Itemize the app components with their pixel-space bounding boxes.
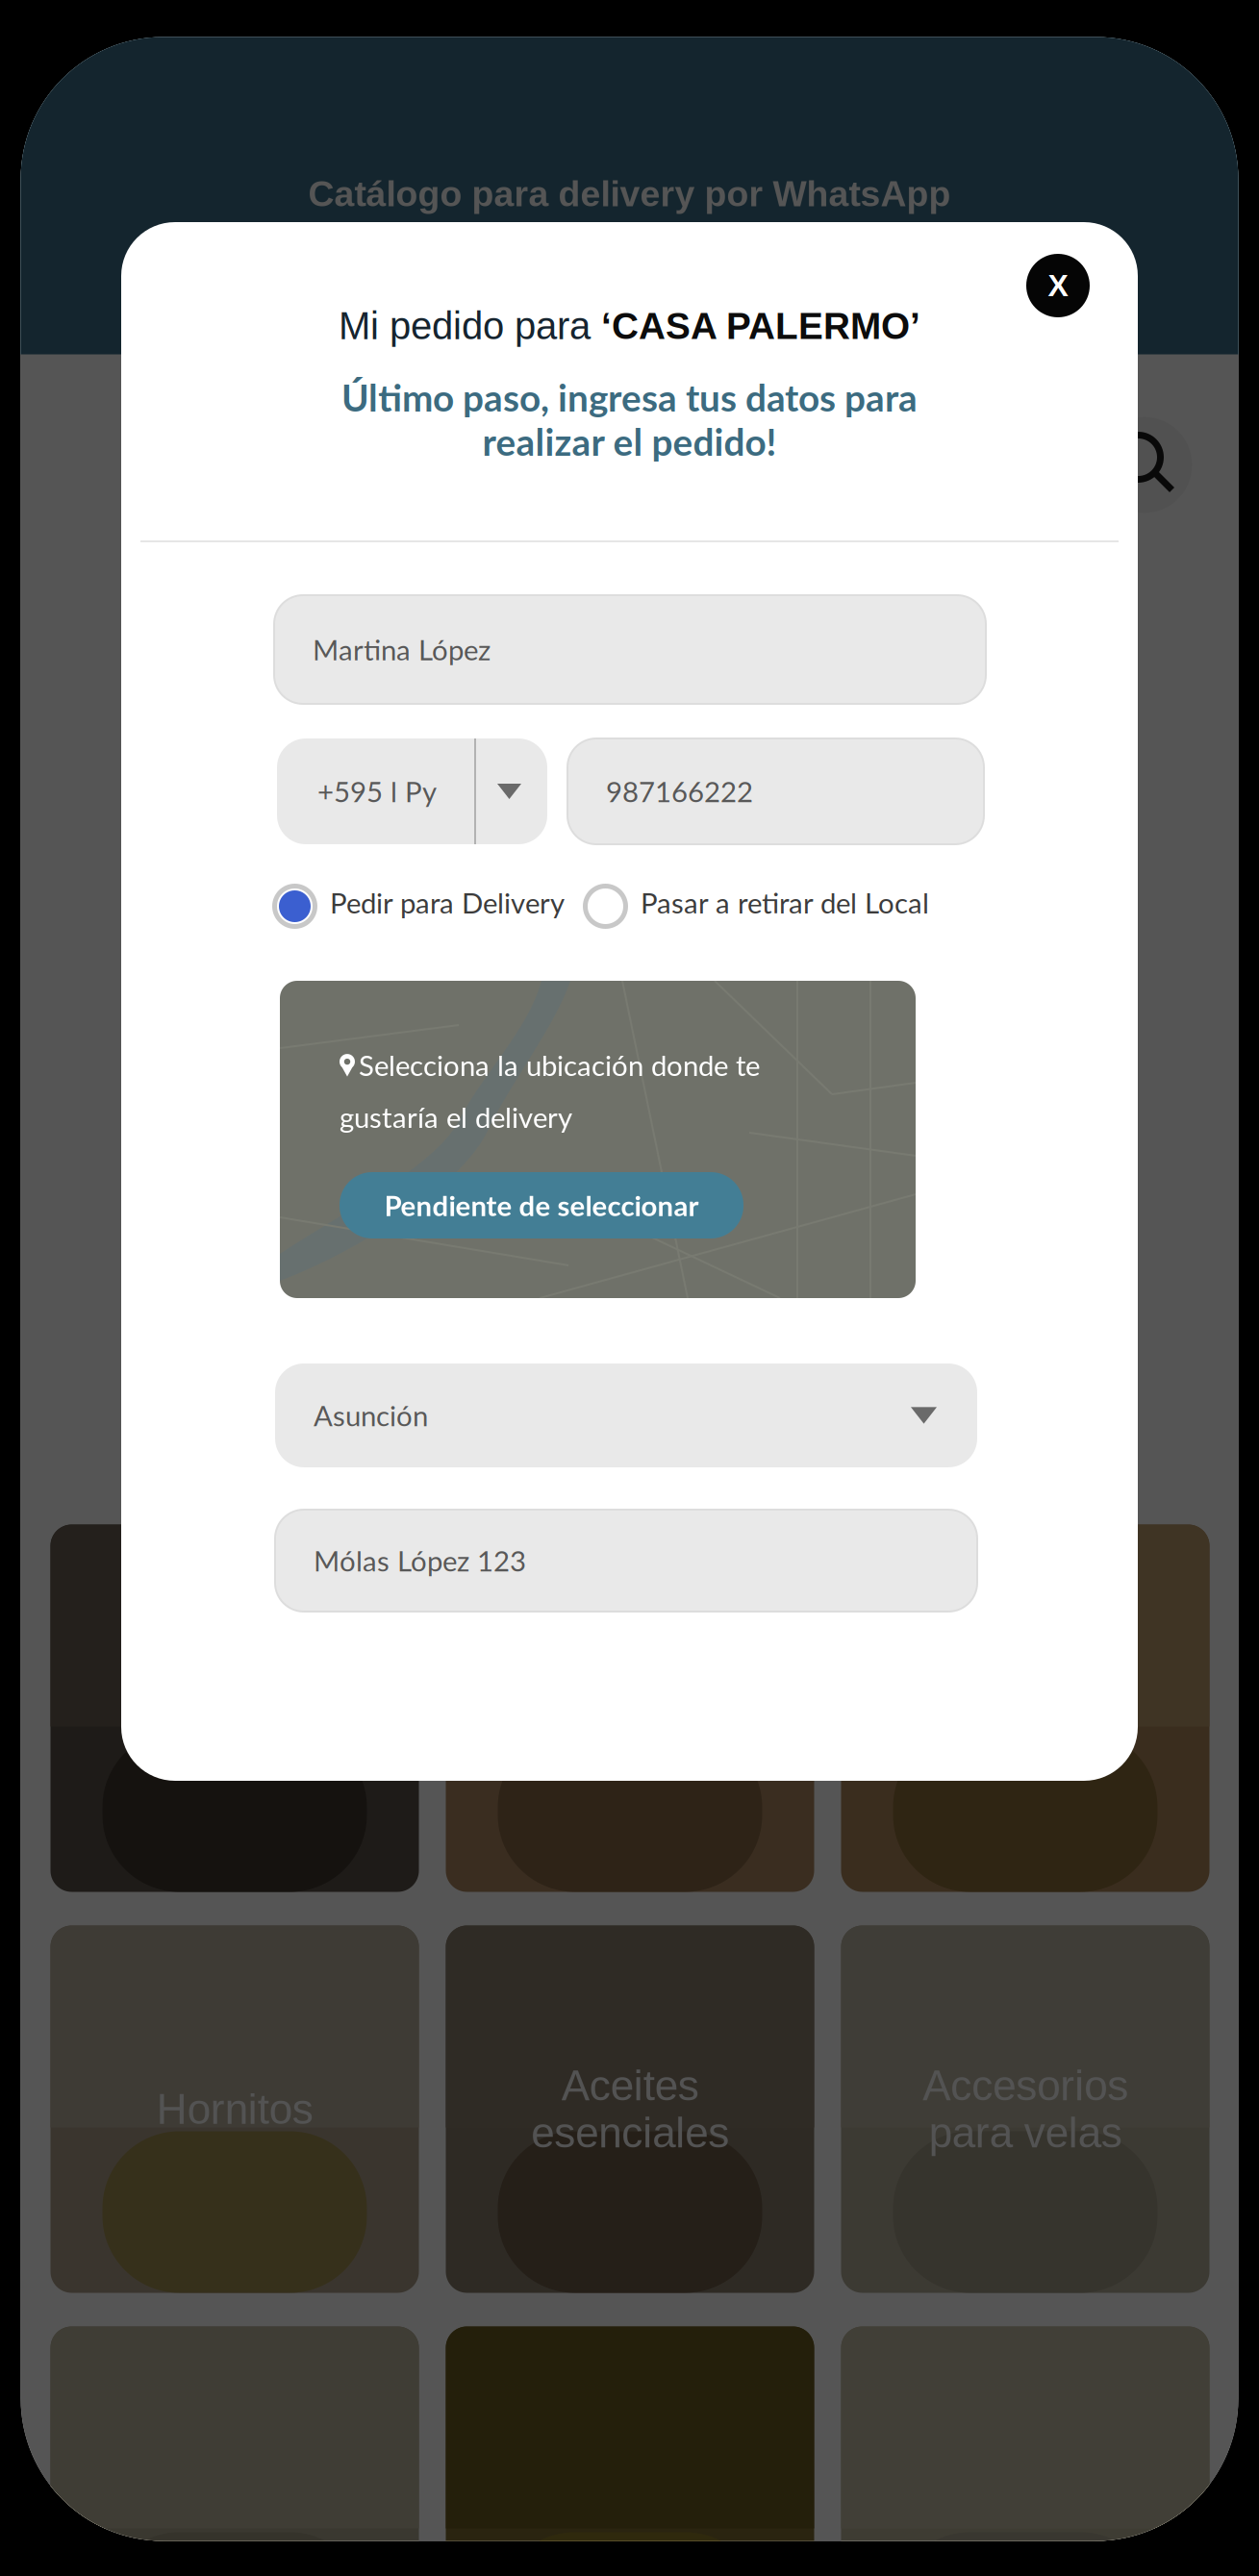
staticText: Martina López [313,633,491,666]
button[interactable]: Asunción [275,1363,977,1467]
staticText: Asunción [314,1398,428,1432]
staticText: Mi pedido para [339,305,601,348]
button[interactable]: Cerrar [1026,254,1090,317]
button[interactable]: Pasar a retirar del Local [583,884,628,929]
button[interactable]: Buscar [1096,417,1192,513]
button[interactable]: 987166222 [567,738,984,844]
staticText: +595 l Py [317,774,437,808]
staticText: X [1048,268,1068,303]
staticText: Pasar a retirar del Local [641,886,929,919]
staticText: gustaría el delivery [340,1100,572,1134]
staticText: Pendiente de seleccionar [384,1188,699,1222]
button[interactable]: Hornitos [50,1926,419,2293]
staticText: ‘CASA PALERMO’ [601,305,920,347]
button[interactable]: Mólas López 123 [275,1510,977,1612]
button[interactable] [841,2326,1209,2576]
staticText: Accesorios para velas [922,2062,1128,2156]
button[interactable]: Pendiente de seleccionar [340,1172,743,1238]
staticText: Pedir para Delivery [330,886,565,919]
button[interactable] [446,1525,814,1892]
staticText: realizar el pedido! [482,419,777,464]
button[interactable]: Aceites esenciales [446,1926,814,2293]
staticText: Último paso, ingresa tus datos para [341,375,918,419]
staticText: Hornitos [156,2086,313,2133]
button[interactable] [50,1525,419,1892]
button[interactable]: +595 l Py [277,738,547,844]
button[interactable]: Martina López [274,595,986,704]
staticText: Selecciona la ubicación donde te [359,1048,760,1082]
staticText: Catálogo para delivery por WhatsApp [308,174,951,214]
button[interactable]: Pedir para Delivery [272,884,317,929]
staticText: Aceites esenciales [531,2062,729,2156]
button[interactable] [841,1525,1209,1892]
button[interactable] [50,2326,419,2576]
staticText: 987166222 [606,774,753,808]
staticText: Mólas López 123 [314,1544,526,1578]
button[interactable]: Accesorios para velas [841,1926,1209,2293]
button[interactable] [446,2326,814,2576]
